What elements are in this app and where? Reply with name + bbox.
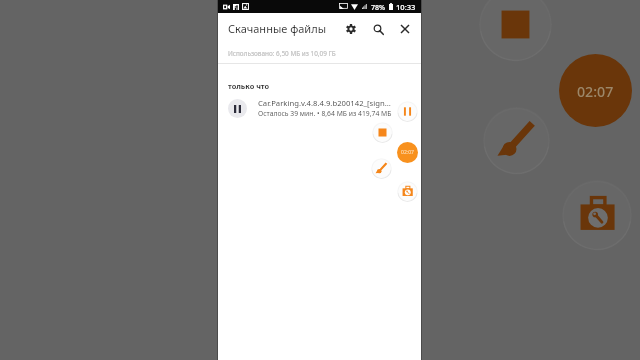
staticText: 10:33 xyxy=(396,2,416,12)
staticText: Car.Parking.v.4.8.4.9.b200142_[sign… xyxy=(258,98,391,108)
button[interactable]: Tools xyxy=(397,181,418,202)
staticText: 02:07 xyxy=(401,149,415,156)
staticText: 02:07 xyxy=(577,82,614,101)
staticText: Осталось 39 мин. • 8,64 МБ из 419,74 МБ xyxy=(258,109,392,118)
button[interactable]: Search xyxy=(367,18,389,40)
button[interactable]: Close xyxy=(394,18,416,40)
staticText: только что xyxy=(228,81,270,91)
staticText: 78% xyxy=(371,2,386,12)
button[interactable]: Settings xyxy=(340,18,362,40)
staticText: Скачанные файлы xyxy=(228,21,327,36)
button[interactable]: Recording timer 02:07 xyxy=(397,142,418,163)
button[interactable]: Brush xyxy=(371,158,392,179)
button[interactable]: Stop xyxy=(372,122,393,143)
button[interactable]: Pause xyxy=(397,101,418,122)
staticText: Использовано: 6,50 МБ из 10,09 ГБ xyxy=(228,49,336,58)
button[interactable]: Car.Parking.v.4.8.4.9.b200142_[sign… xyxy=(218,93,421,123)
